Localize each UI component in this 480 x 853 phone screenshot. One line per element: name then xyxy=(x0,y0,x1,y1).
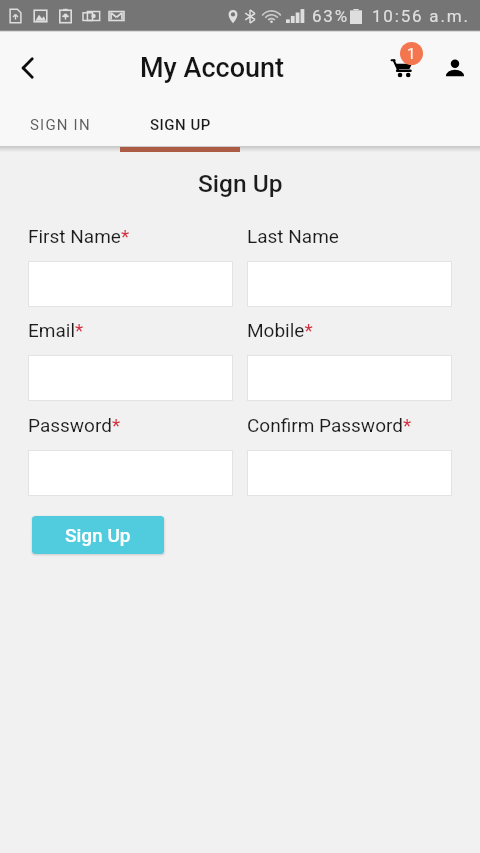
button[interactable]: Sign Up xyxy=(32,516,164,554)
button[interactable]: SIGN IN xyxy=(0,104,120,152)
staticText: Password* xyxy=(28,414,121,436)
staticText: My Account xyxy=(140,52,284,84)
staticText: First Name* xyxy=(28,225,130,247)
button[interactable]: Cart xyxy=(379,46,423,90)
staticText: 63% xyxy=(312,6,349,26)
button[interactable]: SIGN UP xyxy=(120,104,240,152)
staticText: Sign Up xyxy=(65,524,131,546)
button[interactable]: Profile xyxy=(433,46,477,90)
staticText: SIGN UP xyxy=(150,116,211,134)
staticText: Confirm Password* xyxy=(247,414,412,436)
staticText: 10:56 a.m. xyxy=(372,6,470,26)
staticText: 1 xyxy=(407,45,416,63)
staticText: Email* xyxy=(28,319,84,341)
staticText: Mobile* xyxy=(247,319,313,341)
staticText: Sign Up xyxy=(198,169,283,198)
staticText: Last Name xyxy=(247,225,339,247)
staticText: SIGN IN xyxy=(30,116,91,134)
button[interactable]: Back xyxy=(4,45,50,91)
